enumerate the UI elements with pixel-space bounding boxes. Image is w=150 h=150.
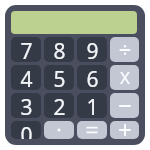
button[interactable]: 6 [77, 65, 107, 90]
button[interactable]: Multiply [110, 65, 139, 90]
staticText: 9 [86, 37, 99, 62]
button[interactable]: Subtract [110, 93, 139, 118]
button[interactable]: Display [11, 11, 137, 34]
staticText: 4 [20, 65, 33, 90]
button[interactable]: Divide [110, 37, 139, 62]
button[interactable]: Equals [77, 121, 107, 139]
button[interactable]: 3 [11, 93, 41, 118]
staticText: 7 [20, 37, 33, 62]
staticText: 5 [53, 65, 66, 90]
staticText: 3 [20, 93, 33, 118]
staticText: 0 [20, 121, 33, 139]
button[interactable]: 9 [77, 37, 107, 62]
staticText: X [120, 66, 130, 89]
button[interactable]: 4 [11, 65, 41, 90]
staticText: 6 [86, 65, 99, 90]
button[interactable]: 5 [44, 65, 74, 90]
button[interactable]: 8 [44, 37, 74, 62]
button[interactable]: 1 [77, 93, 107, 118]
button[interactable]: Add [110, 121, 139, 139]
staticText: 1 [86, 93, 99, 118]
staticText: 2 [53, 93, 66, 118]
button[interactable]: 0 [11, 121, 41, 139]
staticText: 8 [53, 37, 66, 62]
button[interactable]: 2 [44, 93, 74, 118]
button[interactable]: 7 [11, 37, 41, 62]
button[interactable]: Decimal point [44, 121, 74, 139]
